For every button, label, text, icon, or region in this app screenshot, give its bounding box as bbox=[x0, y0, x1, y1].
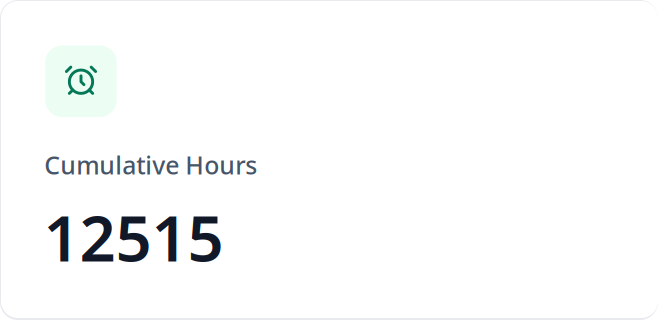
staticText: Cumulative Hours bbox=[44, 148, 257, 182]
staticText: 12515 bbox=[43, 194, 223, 280]
button[interactable]: Cumulative Hours bbox=[1, 1, 658, 318]
